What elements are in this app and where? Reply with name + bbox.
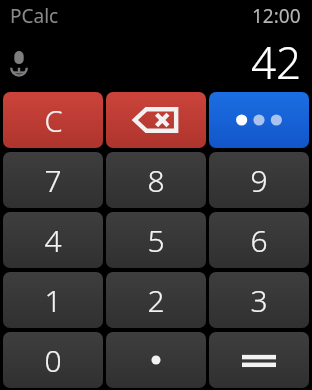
staticText: 42: [251, 32, 302, 92]
button[interactable]: Delete: [106, 92, 206, 148]
staticText: C: [44, 101, 63, 140]
button[interactable]: 6: [209, 212, 309, 268]
button[interactable]: 1: [3, 272, 103, 328]
staticText: 5: [147, 220, 165, 261]
staticText: 6: [250, 220, 268, 261]
staticText: 3: [250, 280, 268, 321]
button[interactable]: C: [3, 92, 103, 148]
staticText: 8: [147, 160, 165, 201]
staticText: 4: [44, 220, 62, 261]
staticText: 7: [44, 160, 62, 201]
button[interactable]: More functions: [209, 92, 309, 148]
staticText: 0: [44, 340, 62, 381]
button[interactable]: 9: [209, 152, 309, 208]
button[interactable]: 4: [3, 212, 103, 268]
button[interactable]: 7: [3, 152, 103, 208]
button[interactable]: Equals: [209, 332, 309, 388]
staticText: 12:00: [252, 3, 301, 29]
button[interactable]: 0: [3, 332, 103, 388]
button[interactable]: 8: [106, 152, 206, 208]
staticText: PCalc: [10, 3, 59, 29]
button[interactable]: Decimal point: [106, 332, 206, 388]
button[interactable]: 2: [106, 272, 206, 328]
staticText: 1: [44, 280, 62, 321]
staticText: 9: [250, 160, 268, 201]
button[interactable]: Voice input: [6, 49, 32, 75]
staticText: 2: [147, 280, 165, 321]
button[interactable]: 3: [209, 272, 309, 328]
button[interactable]: 5: [106, 212, 206, 268]
